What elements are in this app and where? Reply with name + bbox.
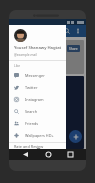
- button[interactable]: ás: [11, 76, 84, 149]
- button[interactable]: Instagram: [9, 93, 66, 105]
- button[interactable]: Home: [41, 149, 55, 160]
- button[interactable]: Friends: [9, 117, 66, 129]
- button[interactable]: Yousef Shanawy Hagtat: [9, 25, 66, 60]
- staticText: Like: [14, 64, 20, 68]
- button[interactable]: Share: [11, 40, 84, 74]
- staticText: Wallpapers HD+: [25, 133, 54, 138]
- staticText: Twitter: [25, 85, 38, 90]
- button[interactable]: Add: [69, 130, 82, 143]
- button[interactable]: Twitter: [9, 81, 66, 93]
- button[interactable]: More options: [73, 26, 83, 36]
- button[interactable]: Recents: [63, 149, 77, 160]
- button[interactable]: Wallpapers HD+: [9, 129, 66, 141]
- button[interactable]: Rate and Review: [9, 143, 66, 149]
- button[interactable]: Search: [62, 26, 72, 36]
- staticText: Instagram: [25, 97, 44, 102]
- button[interactable]: Search: [9, 105, 66, 117]
- staticText: Share: [69, 47, 78, 51]
- staticText: Rate and Review: [14, 144, 44, 149]
- button[interactable]: Messenger: [9, 69, 66, 81]
- staticText: bet: [14, 102, 24, 110]
- staticText: Yousef Shanawy Hagtat: [14, 45, 62, 51]
- staticText: Friends: [25, 121, 39, 126]
- staticText: Search: [25, 109, 38, 114]
- staticText: ás: [14, 82, 21, 90]
- staticText: ra: [14, 92, 21, 100]
- staticText: @example.mail: [14, 53, 37, 57]
- button[interactable]: Share: [67, 45, 80, 52]
- staticText: Messenger: [25, 73, 45, 78]
- button[interactable]: Back: [18, 149, 32, 160]
